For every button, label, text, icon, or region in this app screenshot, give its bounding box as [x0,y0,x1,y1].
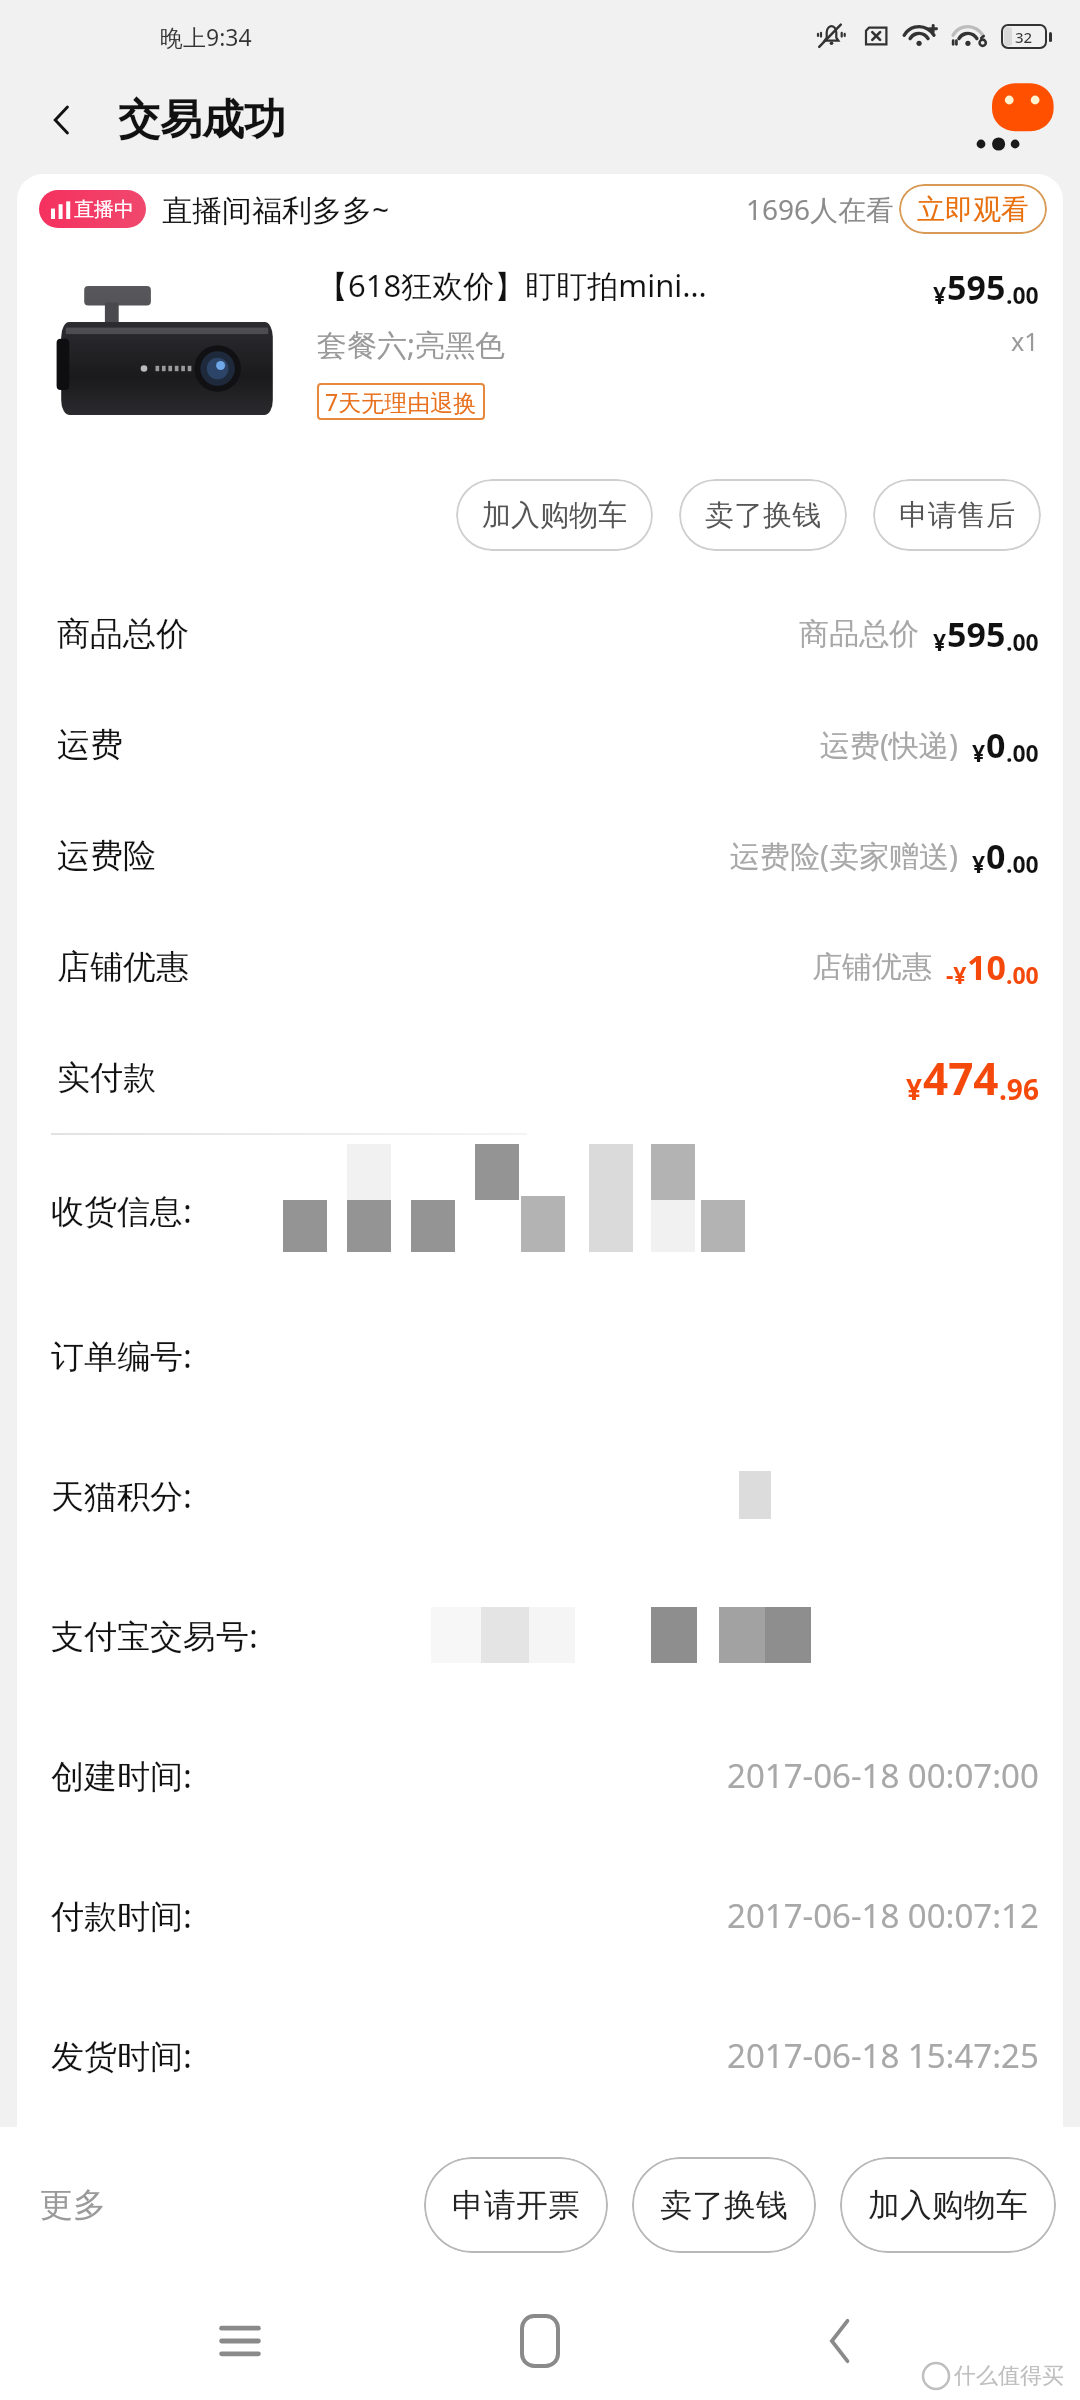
staticText: 店铺优惠 [812,948,932,986]
staticText: ¥ [972,737,986,768]
staticText: 收货信息: [51,1188,192,1233]
button[interactable]: 申请售后 [873,479,1041,551]
staticText: ¥ [933,626,947,657]
staticText: 1696人在看 [746,190,895,228]
staticText: 立即观看 [917,192,1029,227]
staticText: 卖了换钱 [705,497,821,534]
staticText: 更多 [40,2184,106,2226]
staticText: 天猫积分: [51,1473,192,1518]
staticText: .00 [1006,626,1039,657]
staticText: 474 [923,1048,999,1108]
staticText: 什么值得买 [954,2362,1064,2390]
staticText: .00 [1006,737,1039,768]
staticText: 交易成功 [118,94,286,147]
staticText: 0 [986,833,1006,879]
staticText: 商品总价 [799,615,919,653]
button[interactable]: 卖了换钱 [679,479,847,551]
staticText: 直播中 [74,197,134,222]
staticText: 申请售后 [899,497,1015,534]
button[interactable]: Recent apps [180,2282,300,2400]
staticText: 直播间福利多多~ [162,189,390,230]
staticText: .96 [999,1070,1039,1108]
staticText: 加入购物车 [868,2185,1028,2225]
staticText: 创建时间: [51,1753,192,1798]
staticText: ¥ [972,848,986,879]
staticText: -¥ [946,959,967,990]
staticText: 实付款 [57,1057,156,1099]
button[interactable]: 申请开票 [424,2157,608,2253]
button[interactable]: 加入购物车 [840,2157,1056,2253]
staticText: 2017-06-18 00:07:00 [727,1753,1039,1798]
staticText: 运费险(卖家赠送) [730,835,958,876]
staticText: x1 [1011,324,1039,358]
button[interactable]: Back [30,88,94,152]
button[interactable]: 卖了换钱 [632,2157,816,2253]
staticText: 加入购物车 [482,497,627,534]
staticText: 7天无理由退换 [325,386,477,417]
staticText: 卖了换钱 [660,2185,788,2225]
staticText: 运费 [57,724,123,766]
staticText: 10 [967,944,1006,990]
staticText: 【618狂欢价】盯盯拍mini… [317,264,923,306]
staticText: 2017-06-18 00:07:12 [727,1893,1039,1938]
staticText: 运费险 [57,835,156,877]
staticText: 商品总价 [57,613,189,655]
staticText: 付款时间: [51,1893,192,1938]
button[interactable]: Customer service [948,80,1058,160]
staticText: 32 [1015,27,1033,47]
button[interactable]: 更多 [34,2178,112,2232]
staticText: ¥ [933,279,947,310]
button[interactable]: Home [480,2282,600,2400]
staticText: 套餐六;亮黑色 [317,324,1011,365]
staticText: ¥ [906,1070,923,1108]
button[interactable]: 直播中 [17,174,1063,244]
staticText: 0 [986,722,1006,768]
staticText: .00 [1006,959,1039,990]
staticText: 595 [947,264,1006,310]
staticText: 支付宝交易号: [51,1613,258,1658]
button[interactable]: 【618狂欢价】盯盯拍mini… [17,244,1063,460]
staticText: .00 [1006,279,1039,310]
staticText: 运费(快递) [820,724,958,765]
staticText: 店铺优惠 [57,946,189,988]
staticText: 申请开票 [452,2185,580,2225]
staticText: 晚上9:34 [160,21,252,52]
staticText: 2017-06-18 15:47:25 [727,2033,1039,2078]
staticText: 订单编号: [51,1333,192,1378]
button[interactable]: Back [780,2282,900,2400]
button[interactable]: 加入购物车 [456,479,653,551]
staticText: 发货时间: [51,2033,192,2078]
button[interactable]: 立即观看 [917,184,1029,234]
staticText: .00 [1006,848,1039,879]
staticText: 595 [947,611,1006,657]
